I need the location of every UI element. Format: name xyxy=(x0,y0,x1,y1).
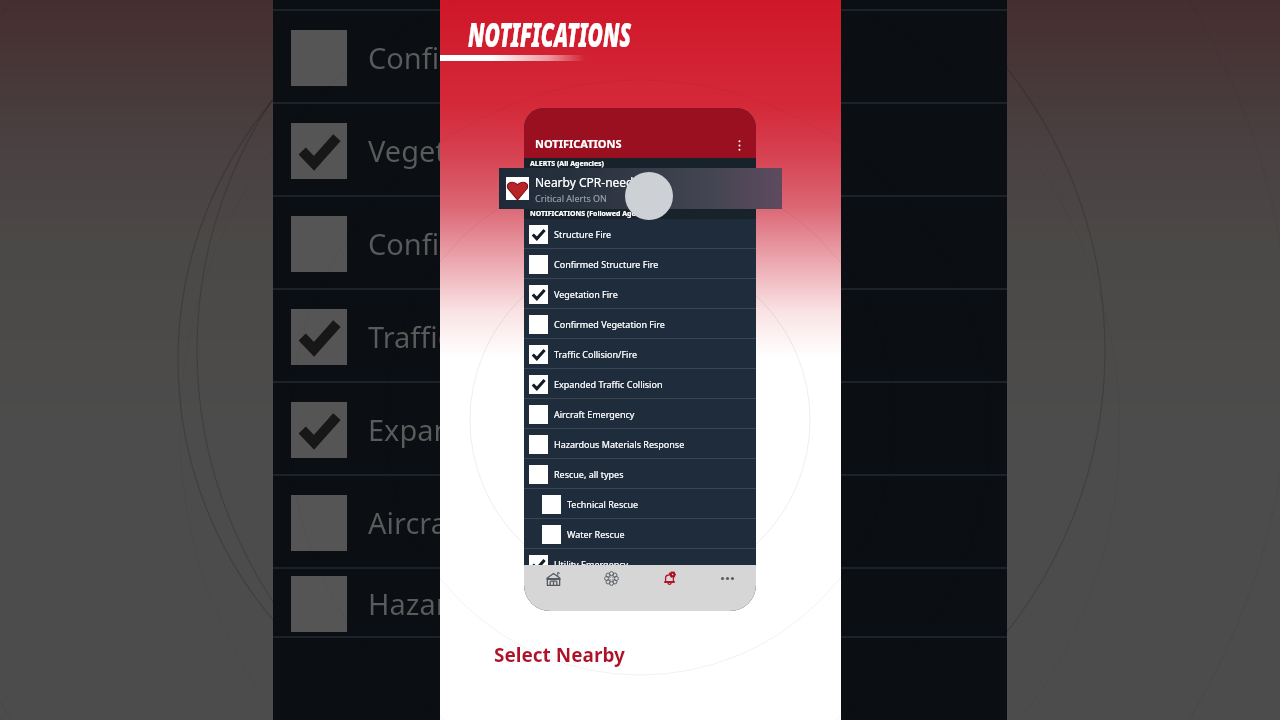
staticText: Aircraft Emergency xyxy=(368,503,628,542)
staticText: Utility Emergency xyxy=(554,558,629,570)
staticText: Rescue, all types xyxy=(554,468,624,480)
staticText: Water Rescue xyxy=(567,528,625,540)
staticText: Structure Fire xyxy=(554,228,612,240)
staticText: Confirmed Vegetation Fire xyxy=(368,224,726,263)
staticText: Select Nearby xyxy=(494,642,625,668)
staticText: Critical Alerts ON xyxy=(535,192,607,204)
staticText: NOTIFICATIONS (Followed Agencies) xyxy=(530,209,657,219)
button[interactable]: Utility Emergency xyxy=(524,549,756,579)
staticText: Hazardous Materials Response xyxy=(554,438,685,450)
staticText: Aircraft Emergency xyxy=(554,408,635,420)
staticText: Confirmed Vegetation Fire xyxy=(554,318,665,330)
staticText: NOTIFICATIONS xyxy=(468,11,631,58)
staticText: Nearby CPR-needed xyxy=(535,174,648,190)
button[interactable]: Aircraft Emergency xyxy=(524,399,756,429)
button[interactable]: Expanded Traffic Collision xyxy=(524,369,756,399)
staticText: Confirmed Structure Fire xyxy=(554,258,659,270)
staticText: Expanded Traffic Collision xyxy=(368,410,718,449)
staticText: Technical Rescue xyxy=(567,498,639,510)
button[interactable]: Water Rescue xyxy=(524,519,756,549)
staticText: Traffic Collision/Fire xyxy=(554,348,638,360)
button[interactable]: More options xyxy=(731,137,747,153)
button[interactable]: Agencies xyxy=(582,565,640,591)
button[interactable]: Rescue, all types xyxy=(524,459,756,489)
staticText: NOTIFICATIONS xyxy=(535,136,622,151)
staticText: ALERTS (All Agencies) xyxy=(530,159,604,169)
button[interactable]: Technical Rescue xyxy=(524,489,756,519)
button[interactable]: Hazardous Materials Response xyxy=(524,429,756,459)
button[interactable]: Notifications xyxy=(640,565,698,591)
staticText: Confirmed Structure Fire xyxy=(368,38,705,77)
staticText: Expanded Traffic Collision xyxy=(554,378,663,390)
button[interactable]: More xyxy=(698,565,756,591)
button[interactable]: Confirmed Structure Fire xyxy=(524,249,756,279)
button[interactable]: Structure Fire xyxy=(524,219,756,249)
button[interactable]: Confirmed Vegetation Fire xyxy=(524,309,756,339)
button[interactable]: Vegetation Fire xyxy=(524,279,756,309)
staticText: Traffic Collision/Fire xyxy=(368,317,636,356)
staticText: Vegetation Fire xyxy=(368,131,574,170)
staticText: Vegetation Fire xyxy=(554,288,618,300)
button[interactable]: Home xyxy=(524,565,582,591)
staticText: Hazardous Materials Response xyxy=(368,584,788,623)
button[interactable]: Traffic Collision/Fire xyxy=(524,339,756,369)
button[interactable]: Nearby CPR-needed xyxy=(499,168,782,209)
